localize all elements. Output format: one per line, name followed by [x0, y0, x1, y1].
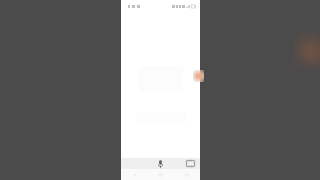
button[interactable]: Keyboard: [185, 159, 195, 168]
button[interactable]: Voice input: [155, 158, 166, 169]
button[interactable]: Voice input: [121, 158, 200, 169]
